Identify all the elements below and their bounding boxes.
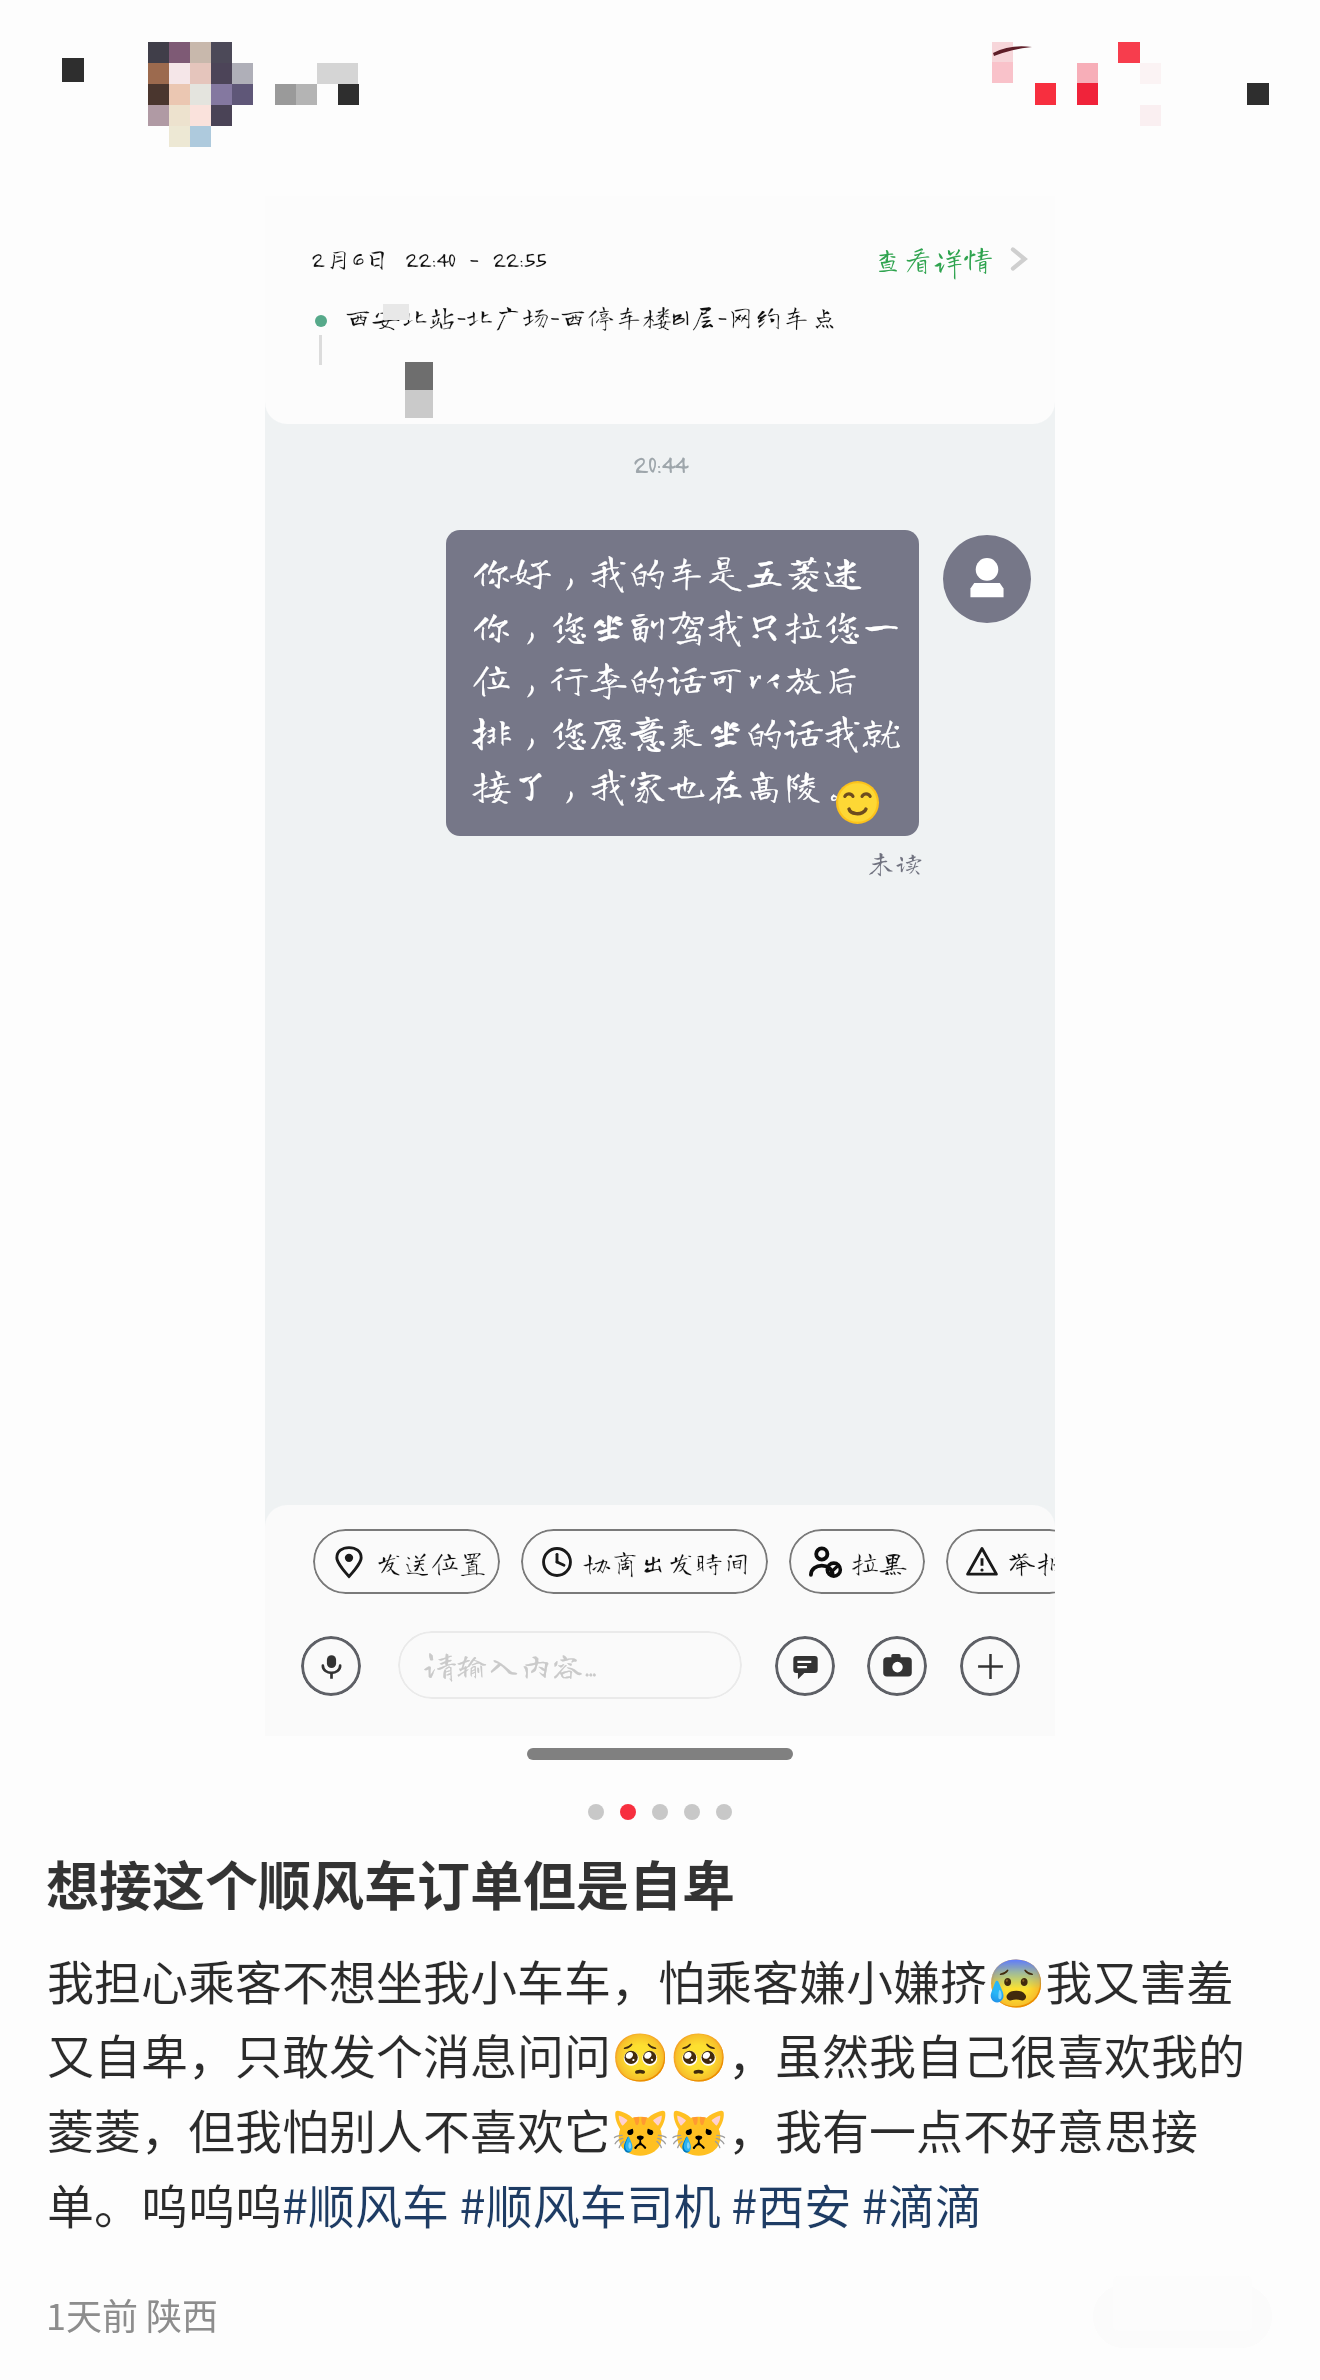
button[interactable]: 请输入内容... — [398, 1631, 742, 1699]
staticText: 你好，我的车是五菱迷 你，您坐副驾我只拉您一 位，行李的话可以放后 排，您愿意乘… — [472, 552, 902, 803]
button[interactable]: Voice — [301, 1636, 361, 1696]
button[interactable]: Camera — [867, 1636, 927, 1696]
button[interactable]: Post image 2 of 5 — [265, 196, 1055, 1736]
staticText: 协商出发时间 — [583, 1548, 752, 1576]
button[interactable]: Emoji — [775, 1636, 835, 1696]
staticText: 想接这个顺风车订单但是自卑 — [46, 1845, 735, 1922]
staticText: 请输入内容... — [424, 1649, 595, 1681]
button[interactable]: Avatar — [943, 535, 1031, 623]
button[interactable]: Page 3 — [652, 1804, 668, 1820]
staticText: 发送位置 — [375, 1548, 488, 1576]
button[interactable]: 你好，我的车是五菱迷 你，您坐副驾我只拉您一 位，行李的话可以放后 排，您愿意乘… — [446, 530, 919, 836]
button[interactable]: Page 1 — [588, 1804, 604, 1820]
button[interactable]: Page 5 — [716, 1804, 732, 1820]
button[interactable]: Page 2 — [620, 1804, 636, 1820]
staticText: 西安北站-北广场-西停车楼B1层-网约车点 — [344, 302, 839, 330]
staticText: 查看详情 — [873, 244, 993, 274]
staticText: 2月6日 22:40 - 22:55 — [311, 244, 546, 272]
staticText: 拉黑 — [851, 1548, 908, 1576]
staticText: 20:44 — [265, 448, 1055, 479]
button[interactable]: 发送位置 — [313, 1529, 500, 1594]
button[interactable]: 举报 — [946, 1529, 1055, 1594]
button[interactable]: 拉黑 — [789, 1529, 925, 1594]
button[interactable]: More — [960, 1636, 1020, 1696]
button[interactable]: 查看详情 — [873, 244, 1033, 274]
staticText: 1天前 陕西 — [46, 2288, 219, 2340]
staticText: 举报 — [1008, 1548, 1055, 1576]
staticText: 我担心乘客不想坐我小车车，怕乘客嫌小嫌挤😰我又害羞又自卑，只敢发个消息问问🥺🥺，… — [47, 1945, 1275, 2238]
button[interactable]: Page 4 — [684, 1804, 700, 1820]
staticText: 未读 — [867, 848, 924, 876]
button[interactable]: 协商出发时间 — [521, 1529, 768, 1594]
